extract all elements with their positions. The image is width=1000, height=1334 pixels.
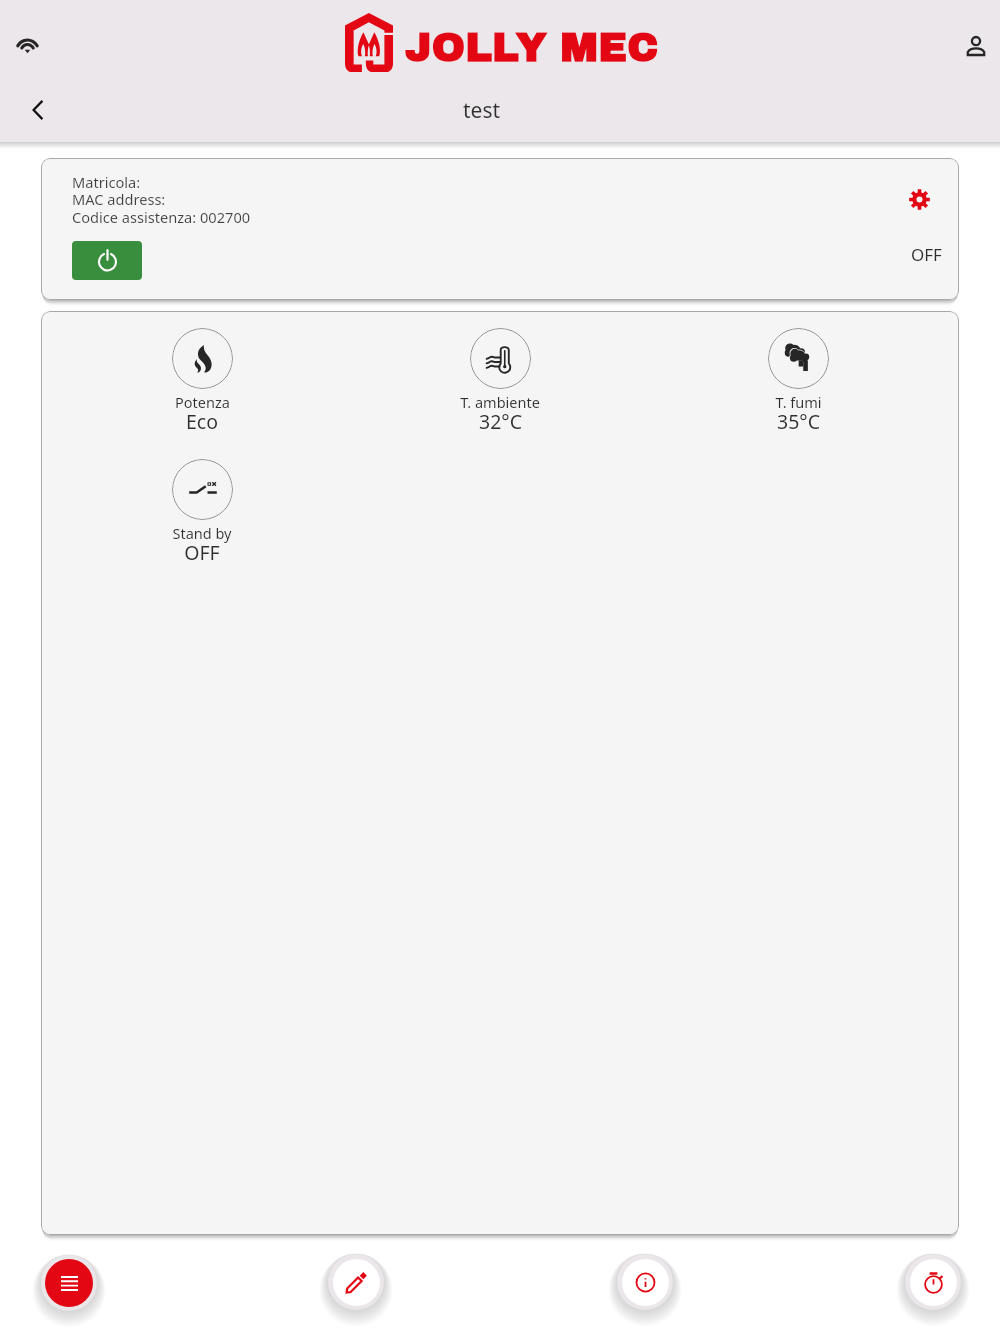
staticText: Matricola: MAC address: Codice assistenz… xyxy=(72,172,251,227)
staticText: T. fumi xyxy=(775,392,822,412)
staticText: test xyxy=(463,96,501,125)
button[interactable]: Back xyxy=(16,88,60,132)
button[interactable]: Power xyxy=(72,241,142,280)
staticText: Eco xyxy=(186,408,218,435)
button[interactable]: Timer xyxy=(905,1254,961,1310)
button[interactable]: Edit xyxy=(328,1254,384,1310)
staticText: 32°C xyxy=(479,408,522,435)
staticText: Potenza xyxy=(175,392,230,412)
button[interactable]: T. fumi xyxy=(649,328,947,439)
button[interactable]: Info xyxy=(617,1254,673,1310)
staticText: OFF xyxy=(911,243,942,266)
button[interactable]: Wifi xyxy=(5,21,49,65)
button[interactable]: Menu xyxy=(41,1255,97,1311)
button[interactable]: Stand by xyxy=(53,459,351,570)
button[interactable]: T. ambiente xyxy=(351,328,649,439)
button[interactable]: Account xyxy=(954,24,998,68)
staticText: T. ambiente xyxy=(460,392,540,412)
button[interactable]: Potenza xyxy=(53,328,351,439)
staticText: JOLLY MEC xyxy=(405,26,659,70)
button[interactable]: Settings xyxy=(900,180,938,218)
staticText: OFF xyxy=(184,539,220,566)
staticText: Stand by xyxy=(172,523,232,543)
staticText: 35°C xyxy=(777,408,820,435)
